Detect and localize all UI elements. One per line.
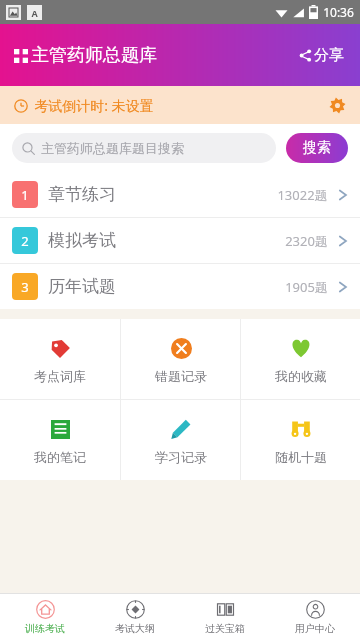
button[interactable]: 搜索 [286,133,348,163]
staticText: 10:36 [323,4,354,20]
staticText: 搜索 [303,139,331,157]
staticText: 用户中心 [295,622,335,635]
button[interactable]: 随机十题 [241,400,360,480]
staticText: 过关宝箱 [205,622,245,635]
staticText: 我的收藏 [275,368,327,384]
button[interactable]: 考点词库 [0,319,120,399]
button[interactable]: 我的收藏 [241,319,360,399]
staticText: 章节练习 [48,184,116,205]
button[interactable]: 考试大纲 [90,594,180,640]
staticText: 随机十题 [275,449,327,465]
staticText: 1905题 [285,278,328,296]
button[interactable]: 考试倒计时: 未设置 [0,86,360,124]
staticText: 3 [21,278,29,296]
button[interactable]: 过关宝箱 [180,594,270,640]
staticText: 1 [21,186,29,204]
staticText: 分享 [314,46,344,65]
staticText: 训练考试 [25,622,65,635]
staticText: 主管药师总题库题目搜索 [41,140,184,156]
button[interactable]: 学习记录 [121,400,240,480]
staticText: 学习记录 [155,449,207,465]
button[interactable]: 分享 [295,42,348,69]
button[interactable]: 训练考试 [0,594,90,640]
staticText: 主管药师总题库 [31,44,157,67]
staticText: 考点词库 [34,368,86,384]
button[interactable]: 主管药师总题库题目搜索 [12,133,276,163]
button[interactable]: 我的笔记 [0,400,120,480]
button[interactable]: 主管药师总题库 [14,44,157,67]
staticText: 2 [21,232,29,250]
button[interactable]: 错题记录 [121,319,240,399]
staticText: 错题记录 [155,368,207,384]
staticText: 模拟考试 [48,230,116,251]
staticText: 13022题 [277,186,328,204]
staticText: 考试倒计时: 未设置 [34,96,154,115]
staticText: 2320题 [285,232,328,250]
button[interactable]: 2 [0,218,360,263]
button[interactable]: 1 [0,172,360,217]
button[interactable]: 用户中心 [270,594,360,640]
staticText: A [31,7,38,19]
staticText: 我的笔记 [34,449,86,465]
button[interactable]: 3 [0,264,360,309]
button[interactable]: 设置倒计时 [326,94,348,116]
staticText: 历年试题 [48,276,116,297]
staticText: 考试大纲 [115,622,155,635]
